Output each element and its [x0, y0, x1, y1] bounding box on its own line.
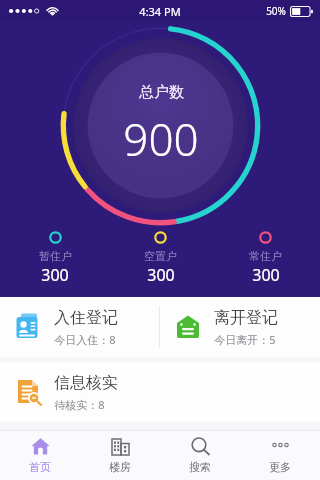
- staticText: 楼房: [109, 460, 131, 474]
- other: 离开登记: [174, 312, 204, 342]
- other: 楼房: [110, 436, 131, 457]
- button[interactable]: 信息核实: [0, 362, 160, 422]
- staticText: 常住户: [249, 249, 282, 263]
- button[interactable]: 搜索: [160, 430, 240, 480]
- staticText: 4:34 PM: [139, 4, 181, 19]
- staticText: 空置户: [144, 249, 177, 263]
- staticText: 暂住户: [39, 249, 72, 263]
- staticText: 待核实：8: [54, 397, 105, 412]
- staticText: 入住登记: [54, 308, 118, 328]
- button[interactable]: 离开登记: [160, 297, 320, 357]
- other: 更多: [270, 436, 291, 457]
- staticText: 搜索: [189, 460, 211, 474]
- button[interactable]: 入住登记: [0, 297, 159, 357]
- button[interactable]: 常住户: [213, 229, 318, 288]
- other: 首页: [30, 436, 51, 457]
- other: 入住登记: [14, 312, 44, 342]
- staticText: 更多: [269, 460, 291, 474]
- staticText: 900: [123, 109, 199, 169]
- button[interactable]: 首页: [0, 430, 80, 480]
- staticText: 首页: [29, 460, 51, 474]
- staticText: 300: [147, 264, 175, 286]
- staticText: 今日入住：8: [54, 332, 116, 347]
- button[interactable]: 暂住户: [2, 229, 108, 288]
- staticText: 信息核实: [54, 373, 118, 393]
- staticText: 300: [252, 264, 280, 286]
- staticText: 300: [41, 264, 69, 286]
- other: 信息核实: [14, 377, 44, 407]
- button[interactable]: 楼房: [80, 430, 160, 480]
- staticText: 今日离开：5: [214, 332, 276, 347]
- staticText: 总户数: [139, 83, 184, 102]
- button[interactable]: 更多: [240, 430, 320, 480]
- staticText: 离开登记: [214, 308, 278, 328]
- staticText: 50%: [266, 4, 286, 18]
- button[interactable]: 空置户: [108, 229, 213, 288]
- other: 搜索: [190, 436, 211, 457]
